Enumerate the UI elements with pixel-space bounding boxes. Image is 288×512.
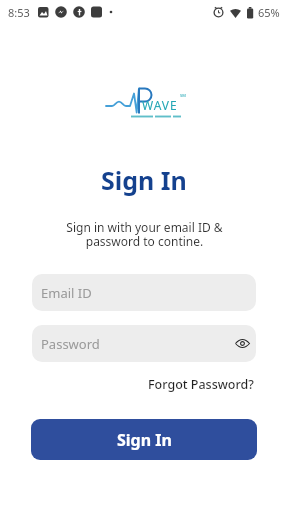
staticText: Sign in with your email ID & password to… xyxy=(66,219,223,249)
staticText: 65% xyxy=(258,5,280,20)
button[interactable]: Forgot Password? xyxy=(148,376,254,393)
staticText: WAVE xyxy=(142,97,178,113)
staticText: Password xyxy=(41,335,100,353)
staticText: 8:53 xyxy=(8,5,30,20)
staticText: Email ID xyxy=(41,284,92,302)
staticText: Sign In xyxy=(117,429,172,451)
button[interactable]: Password xyxy=(32,325,256,362)
staticText: Sign In xyxy=(101,163,187,197)
button[interactable]: Email ID xyxy=(32,274,256,311)
staticText: SM xyxy=(180,93,186,98)
button[interactable]: Sign In xyxy=(31,419,257,460)
